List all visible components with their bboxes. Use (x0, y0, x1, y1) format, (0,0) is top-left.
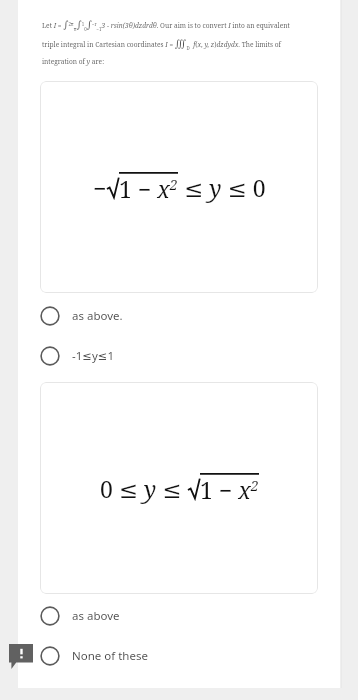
staticText: − (93, 172, 107, 203)
staticText: -1≤y≤1 (72, 348, 114, 364)
staticText: ≤ y ≤ 0 (184, 172, 266, 203)
button[interactable]: -1≤y≤1 (18, 343, 340, 369)
button[interactable]: 0 ≤ y ≤ (40, 382, 318, 594)
staticText: triple integral in Cartesian coordinates… (42, 38, 281, 51)
button[interactable]: as above (18, 603, 340, 629)
staticText: 1 − x2 (200, 474, 259, 505)
button[interactable]: − (40, 81, 318, 293)
button[interactable]: as above. (18, 303, 340, 329)
staticText: 0 ≤ y ≤ (100, 473, 188, 504)
button[interactable]: Feedback (9, 644, 33, 669)
staticText: integration of y are: (42, 57, 105, 66)
staticText: Let I = ∫2ππ∫10∫−r−13 − rsin(3θ)dzdrdθ. … (42, 19, 290, 32)
staticText: as above (72, 608, 120, 624)
button[interactable]: None of these (18, 643, 340, 669)
staticText: as above. (72, 308, 123, 324)
staticText: None of these (72, 648, 148, 664)
staticText: 1 − x2 (119, 173, 178, 204)
